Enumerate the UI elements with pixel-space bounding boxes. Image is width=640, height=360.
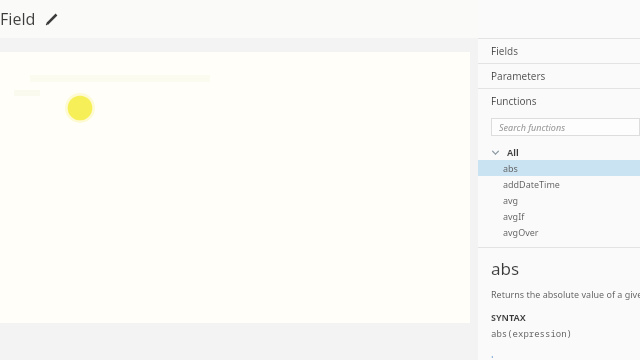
button[interactable]: Search functions (491, 118, 640, 136)
button[interactable]: Edit name (44, 11, 60, 27)
button[interactable]: avgOver (478, 224, 640, 240)
button[interactable]: All (478, 144, 640, 160)
staticText: addDateTime (503, 178, 560, 190)
staticText: avgIf (503, 210, 525, 222)
staticText: Search functions (499, 121, 566, 133)
staticText: Field (0, 8, 36, 30)
staticText: abs(expression) (491, 327, 573, 339)
staticText: avg (503, 194, 519, 206)
button[interactable]: addDateTime (478, 176, 640, 192)
staticText: SYNTAX (491, 311, 526, 323)
button[interactable]: Field (0, 4, 68, 34)
button[interactable]: avgIf (478, 208, 640, 224)
button[interactable]: avg (478, 192, 640, 208)
button[interactable]: Functions (478, 89, 640, 113)
staticText: Parameters (491, 69, 546, 83)
staticText: Returns the absolute value of a given ex… (491, 288, 640, 300)
staticText: avgOver (503, 226, 539, 238)
staticText: abs (491, 257, 520, 280)
staticText: abs (503, 162, 518, 174)
button[interactable]: Parameters (478, 64, 640, 88)
staticText: Fields (491, 44, 518, 58)
staticText: All (507, 146, 519, 158)
button[interactable]: abs (478, 160, 640, 176)
staticText: Learn more (491, 353, 540, 358)
button[interactable]: Learn more (491, 351, 540, 360)
staticText: Functions (491, 94, 537, 108)
button[interactable]: Fields (478, 39, 640, 63)
